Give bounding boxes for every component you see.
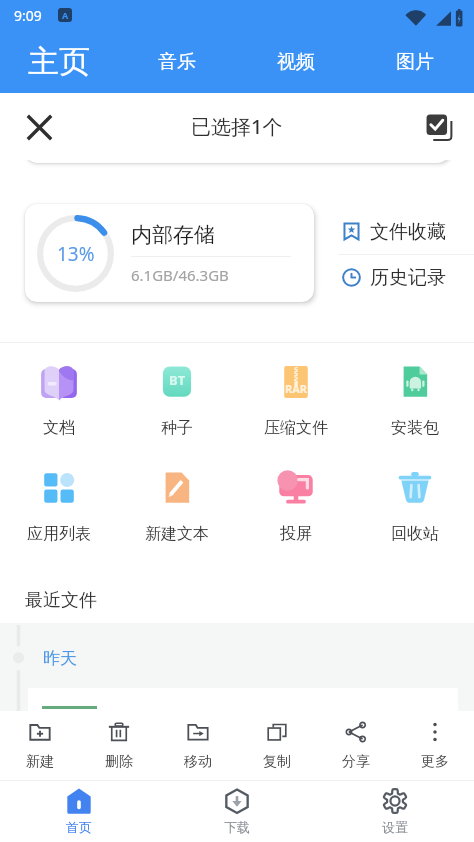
button[interactable]: Close selection: [16, 104, 62, 150]
button[interactable]: RAR: [236, 363, 355, 438]
staticText: 文件收藏: [370, 220, 446, 244]
button[interactable]: 历史记录: [338, 255, 474, 300]
staticText: BT: [169, 371, 186, 389]
staticText: 视频: [277, 50, 315, 74]
staticText: 最近文件: [25, 589, 97, 612]
button[interactable]: 13%: [25, 204, 314, 302]
button[interactable]: 设置: [316, 781, 474, 842]
button[interactable]: 应用列表: [0, 469, 118, 544]
staticText: 主页: [28, 42, 90, 81]
button[interactable]: 视频: [236, 30, 355, 93]
staticText: 内部存储: [131, 222, 215, 248]
button[interactable]: 更多: [395, 711, 474, 780]
button[interactable]: 移动: [158, 711, 237, 780]
staticText: 复制: [263, 753, 291, 771]
staticText: 图片: [396, 50, 434, 74]
staticText: 音乐: [158, 50, 196, 74]
staticText: 13%: [57, 241, 95, 267]
staticText: 投屏: [280, 524, 312, 544]
staticText: 设置: [382, 819, 408, 835]
staticText: 9:09: [14, 6, 42, 25]
button[interactable]: BT: [118, 363, 236, 438]
button[interactable]: 投屏: [236, 469, 355, 544]
staticText: 6.1GB/46.3GB: [131, 265, 229, 285]
button[interactable]: 安装包: [355, 363, 474, 438]
staticText: 种子: [161, 418, 193, 438]
button[interactable]: 删除: [79, 711, 158, 780]
staticText: 已选择1个: [191, 113, 283, 140]
staticText: 新建文本: [145, 524, 209, 544]
button[interactable]: 新建: [0, 711, 79, 780]
button[interactable]: 图片: [355, 30, 474, 93]
button[interactable]: 回收站: [355, 469, 474, 544]
button[interactable]: 首页: [0, 781, 158, 842]
button[interactable]: 复制: [237, 711, 316, 780]
staticText: 下载: [224, 819, 250, 835]
staticText: 安装包: [391, 418, 439, 438]
button[interactable]: Select all: [416, 104, 462, 150]
button[interactable]: 下载: [158, 781, 316, 842]
button[interactable]: 新建文本: [118, 469, 236, 544]
button[interactable]: 主页: [0, 30, 118, 93]
staticText: 删除: [105, 753, 133, 771]
button[interactable]: 文档: [0, 363, 118, 438]
button[interactable]: 分享: [316, 711, 395, 780]
staticText: 新建: [26, 753, 54, 771]
staticText: 移动: [184, 753, 212, 771]
staticText: 首页: [66, 819, 92, 835]
staticText: 历史记录: [370, 266, 446, 290]
staticText: A: [62, 9, 69, 21]
staticText: 文档: [43, 418, 75, 438]
staticText: 昨天: [43, 648, 77, 669]
staticText: 更多: [421, 753, 449, 771]
staticText: RAR: [285, 381, 308, 396]
staticText: 应用列表: [27, 524, 91, 544]
staticText: 回收站: [391, 524, 439, 544]
button[interactable]: 文件收藏: [338, 209, 474, 254]
button[interactable]: 音乐: [118, 30, 236, 93]
staticText: 压缩文件: [264, 418, 328, 438]
staticText: 分享: [342, 753, 370, 771]
